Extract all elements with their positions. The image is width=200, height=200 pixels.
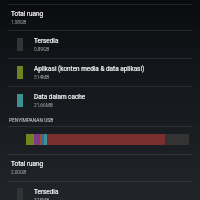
staticText: 2,00GB bbox=[11, 170, 27, 176]
staticText: Tersedia bbox=[34, 188, 59, 196]
staticText: 21,66MB bbox=[34, 103, 53, 109]
button[interactable]: Tersedia bbox=[0, 31, 200, 58]
staticText: Total ruang bbox=[11, 10, 44, 18]
staticText: 0,89GB bbox=[34, 47, 50, 53]
staticText: 375MB bbox=[34, 198, 50, 200]
staticText: Total ruang bbox=[11, 160, 44, 168]
button[interactable]: Tersedia bbox=[0, 188, 200, 200]
staticText: 1,58GB bbox=[11, 20, 27, 26]
button[interactable]: Total ruang bbox=[0, 155, 200, 181]
staticText: 514MB bbox=[34, 75, 50, 81]
button[interactable]: Data dalam cache bbox=[0, 87, 200, 114]
staticText: Tersedia bbox=[34, 37, 59, 45]
staticText: Data dalam cache bbox=[34, 93, 86, 101]
staticText: Aplikasi (konten media & data aplikasi) bbox=[34, 65, 145, 73]
staticText: PENYIMPANAN USB bbox=[9, 117, 54, 123]
button[interactable]: Aplikasi (konten media & data aplikasi) bbox=[0, 59, 200, 86]
button[interactable]: Total ruang bbox=[0, 5, 200, 30]
